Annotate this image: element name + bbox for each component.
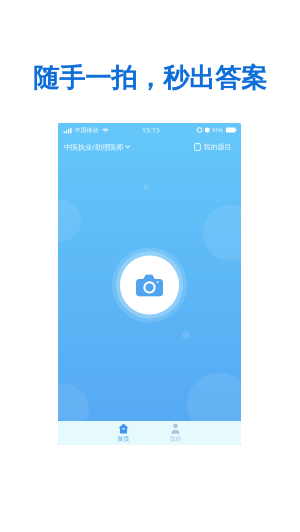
staticText: 我的题目 <box>203 143 231 151</box>
staticText: 91% <box>212 126 223 134</box>
staticText: 首页 <box>117 435 129 442</box>
button[interactable]: 中医执业/助理医师 <box>58 137 136 157</box>
button[interactable]: Take a photo <box>112 247 187 322</box>
button[interactable]: 首页 <box>97 421 149 445</box>
button[interactable]: 我的题目 <box>188 137 241 157</box>
staticText: 我的 <box>169 435 181 442</box>
staticText: 随手一拍，秒出答案 <box>33 62 267 94</box>
button[interactable]: 我的 <box>149 421 201 445</box>
staticText: 中医执业/助理医师 <box>64 142 123 152</box>
staticText: 中国移动 <box>74 126 98 134</box>
staticText: 15:15 <box>142 125 160 135</box>
